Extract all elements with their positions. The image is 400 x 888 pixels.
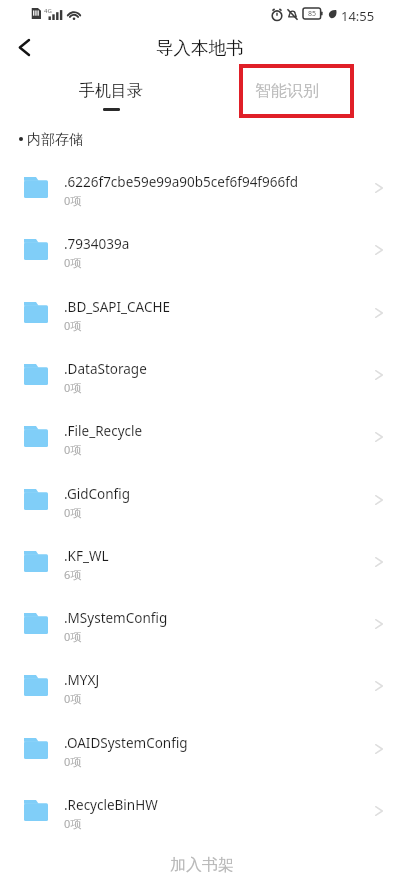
staticText: 0项 [64, 629, 82, 644]
staticText: 加入书架 [170, 855, 234, 875]
staticText: .RecycleBinHW [64, 796, 364, 814]
staticText: 内部存储 [27, 131, 83, 149]
staticText: 14:55 [341, 7, 375, 25]
staticText: 6项 [64, 567, 82, 582]
staticText: 智能识别 [255, 81, 319, 101]
button[interactable]: .7934039a [0, 218, 400, 280]
staticText: 0项 [64, 816, 82, 831]
button[interactable]: .DataStorage [0, 343, 400, 405]
staticText: .DataStorage [64, 360, 364, 378]
button[interactable]: .MYXJ [0, 654, 400, 716]
staticText: .KF_WL [64, 547, 364, 565]
button[interactable]: .KF_WL [0, 530, 400, 592]
staticText: .MSystemConfig [64, 609, 364, 627]
staticText: 4G [44, 7, 52, 15]
staticText: 0项 [64, 380, 82, 395]
staticText: 0项 [64, 691, 82, 706]
staticText: 0项 [64, 255, 82, 270]
staticText: 导入本地书 [156, 37, 244, 59]
staticText: .MYXJ [64, 671, 364, 689]
button[interactable]: Back [4, 28, 44, 68]
staticText: 0项 [64, 193, 82, 208]
staticText: 0项 [64, 318, 82, 333]
staticText: .6226f7cbe59e99a90b5cef6f94f966fd [64, 173, 364, 191]
staticText: 0项 [64, 754, 82, 769]
button[interactable]: .MSystemConfig [0, 592, 400, 654]
button[interactable]: .BD_SAPI_CACHE [0, 281, 400, 343]
button[interactable]: 智能识别 [231, 70, 342, 110]
staticText: 0项 [64, 442, 82, 457]
button[interactable]: .OAIDSystemConfig [0, 717, 400, 779]
button[interactable]: .GidConfig [0, 468, 400, 530]
staticText: .BD_SAPI_CACHE [64, 298, 364, 316]
staticText: 手机目录 [79, 81, 143, 101]
button[interactable]: 手机目录 [55, 70, 166, 120]
staticText: .GidConfig [64, 485, 364, 503]
staticText: 0项 [64, 505, 82, 520]
staticText: .OAIDSystemConfig [64, 734, 364, 752]
staticText: .7934039a [64, 235, 364, 253]
button[interactable]: .RecycleBinHW [0, 779, 400, 841]
staticText: .File_Recycle [64, 422, 364, 440]
staticText: 85 [308, 9, 317, 19]
button[interactable]: .File_Recycle [0, 405, 400, 467]
button[interactable]: 加入书架 [0, 842, 400, 888]
button[interactable]: .6226f7cbe59e99a90b5cef6f94f966fd [0, 156, 400, 218]
